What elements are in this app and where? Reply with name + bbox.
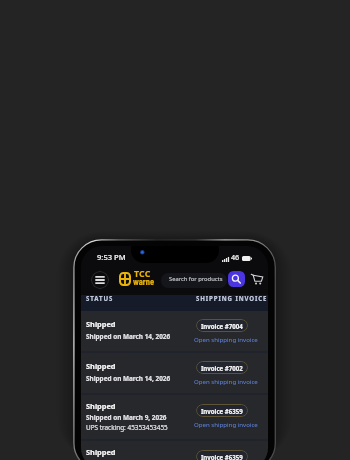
staticText: STATUS — [86, 294, 114, 302]
button[interactable]: Shopping cart — [251, 274, 263, 286]
button[interactable]: Open shipping invoice — [194, 335, 258, 343]
button[interactable]: Shipped — [81, 395, 268, 439]
staticText: Invoice #7002 — [201, 364, 243, 372]
staticText: TCC — [134, 268, 151, 280]
staticText: Search for products — [169, 275, 223, 283]
button[interactable]: Search — [228, 271, 245, 287]
staticText: Shipped on March 14, 2026 — [86, 374, 171, 383]
staticText: Shipped — [86, 401, 116, 411]
button[interactable]: Search for products — [161, 273, 227, 288]
staticText: Shipped — [86, 447, 116, 457]
button[interactable]: Shipped — [81, 441, 268, 460]
staticText: SHIPPING INVOICE — [196, 294, 268, 302]
staticText: Invoice #7004 — [201, 322, 243, 330]
staticText: UPS tracking: 45353453455 — [86, 423, 168, 432]
button[interactable]: Invoice #6359 — [196, 450, 248, 460]
staticText: Invoice #6359 — [201, 407, 243, 415]
staticText: 9:53 PM — [97, 252, 126, 262]
staticText: 46 — [231, 252, 240, 262]
button[interactable]: Open shipping invoice — [194, 420, 258, 428]
staticText: Shipped on March 9, 2026 — [86, 413, 167, 422]
staticText: warne — [133, 277, 155, 287]
staticText: Shipped — [86, 361, 116, 371]
staticText: Invoice #6359 — [201, 453, 243, 460]
button[interactable]: Shipped — [81, 353, 268, 393]
button[interactable]: Invoice #7004 — [196, 319, 248, 332]
button[interactable]: Open shipping invoice — [194, 377, 258, 385]
button[interactable]: Open menu — [91, 271, 109, 289]
button[interactable]: Invoice #7002 — [196, 361, 248, 374]
staticText: Shipped on March 14, 2026 — [86, 332, 171, 341]
button[interactable]: Invoice #6359 — [196, 404, 248, 417]
staticText: Shipped — [86, 319, 116, 329]
button[interactable]: Shipped — [81, 311, 268, 351]
